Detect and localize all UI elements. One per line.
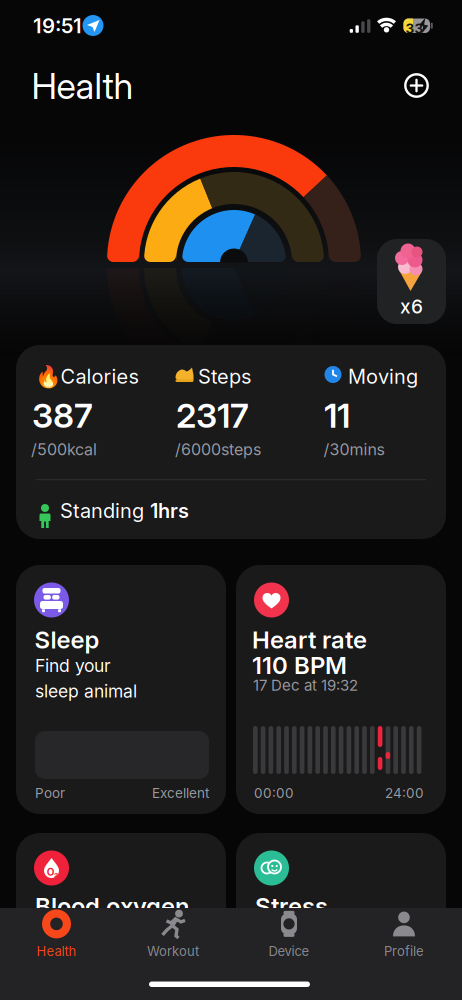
button[interactable]: Blood oxygen [16,833,226,963]
button[interactable]: Sleep [16,565,226,814]
staticText: sleep animal [35,678,137,704]
staticText: 24:00 [385,783,424,803]
button[interactable]: Health [1,906,111,964]
staticText: Poor [35,783,65,803]
staticText: 19:51 [33,11,82,40]
staticText: Excellent [152,783,209,803]
staticText: 2317 [176,391,249,440]
staticText: 11 [324,391,350,440]
staticText: Device [268,942,309,961]
staticText: Health [31,60,133,112]
staticText: 387 [32,391,93,440]
staticText: Sleep [34,622,99,657]
staticText: Steps [198,362,251,391]
staticText: Calories [60,362,138,391]
button[interactable]: Add [403,72,430,99]
button[interactable]: Rewards x6 [377,239,446,324]
staticText: Blood oxygen [35,889,189,924]
staticText: Profile [384,942,424,961]
staticText: 33 [405,19,423,38]
staticText: Heart rate [252,622,367,657]
staticText: 00:00 [254,783,294,803]
staticText: /30mins [323,438,384,461]
staticText: /500kcal [31,438,97,461]
staticText: Moving [348,362,418,391]
staticText: Find your [35,653,111,678]
staticText: Health [36,942,76,961]
button[interactable]: Activity summary [16,345,446,539]
button[interactable]: Profile [349,906,459,964]
staticText: Standing 1hrs [60,499,189,523]
staticText: x6 [400,293,423,320]
button[interactable]: Device [234,906,344,964]
staticText: O₂ [47,865,59,879]
button[interactable]: Workout [118,906,228,964]
staticText: Workout [147,942,199,961]
staticText: /6000steps [175,438,261,461]
button[interactable]: Heart rate [236,565,446,814]
button[interactable]: Stress [236,833,446,963]
staticText: 🔥 [35,365,62,389]
staticText: Stress [255,889,328,924]
staticText: 17 Dec at 19:32 [253,674,358,696]
staticText: 110 BPM [252,648,347,683]
